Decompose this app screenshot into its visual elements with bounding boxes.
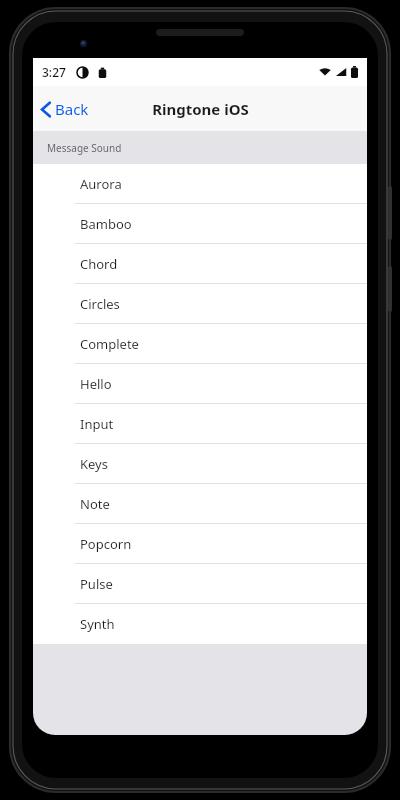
staticText: Hello bbox=[80, 375, 112, 393]
staticText: Input bbox=[80, 415, 114, 433]
staticText: Message Sound bbox=[47, 141, 122, 155]
staticText: Circles bbox=[80, 295, 120, 313]
staticText: Synth bbox=[80, 615, 115, 633]
button[interactable]: Circles bbox=[33, 284, 367, 324]
staticText: Complete bbox=[80, 335, 139, 353]
button[interactable]: Note bbox=[33, 484, 367, 524]
button[interactable]: Back bbox=[33, 94, 99, 124]
button[interactable]: Popcorn bbox=[33, 524, 367, 564]
staticText: Aurora bbox=[80, 175, 122, 193]
button[interactable]: Bamboo bbox=[33, 204, 367, 244]
staticText: Chord bbox=[80, 255, 118, 273]
button[interactable]: Aurora bbox=[33, 164, 367, 204]
button[interactable]: Input bbox=[33, 404, 367, 444]
staticText: Keys bbox=[80, 455, 108, 473]
button[interactable]: Chord bbox=[33, 244, 367, 284]
staticText: Pulse bbox=[80, 575, 113, 593]
staticText: Note bbox=[80, 495, 110, 513]
staticText: 3:27 bbox=[42, 64, 66, 80]
staticText: Bamboo bbox=[80, 215, 132, 233]
staticText: Popcorn bbox=[80, 535, 132, 553]
button[interactable]: Hello bbox=[33, 364, 367, 404]
button[interactable]: Complete bbox=[33, 324, 367, 364]
staticText: Back bbox=[55, 99, 89, 119]
button[interactable]: Pulse bbox=[33, 564, 367, 604]
button[interactable]: Synth bbox=[33, 604, 367, 644]
staticText: Ringtone iOS bbox=[152, 99, 249, 119]
button[interactable]: Keys bbox=[33, 444, 367, 484]
